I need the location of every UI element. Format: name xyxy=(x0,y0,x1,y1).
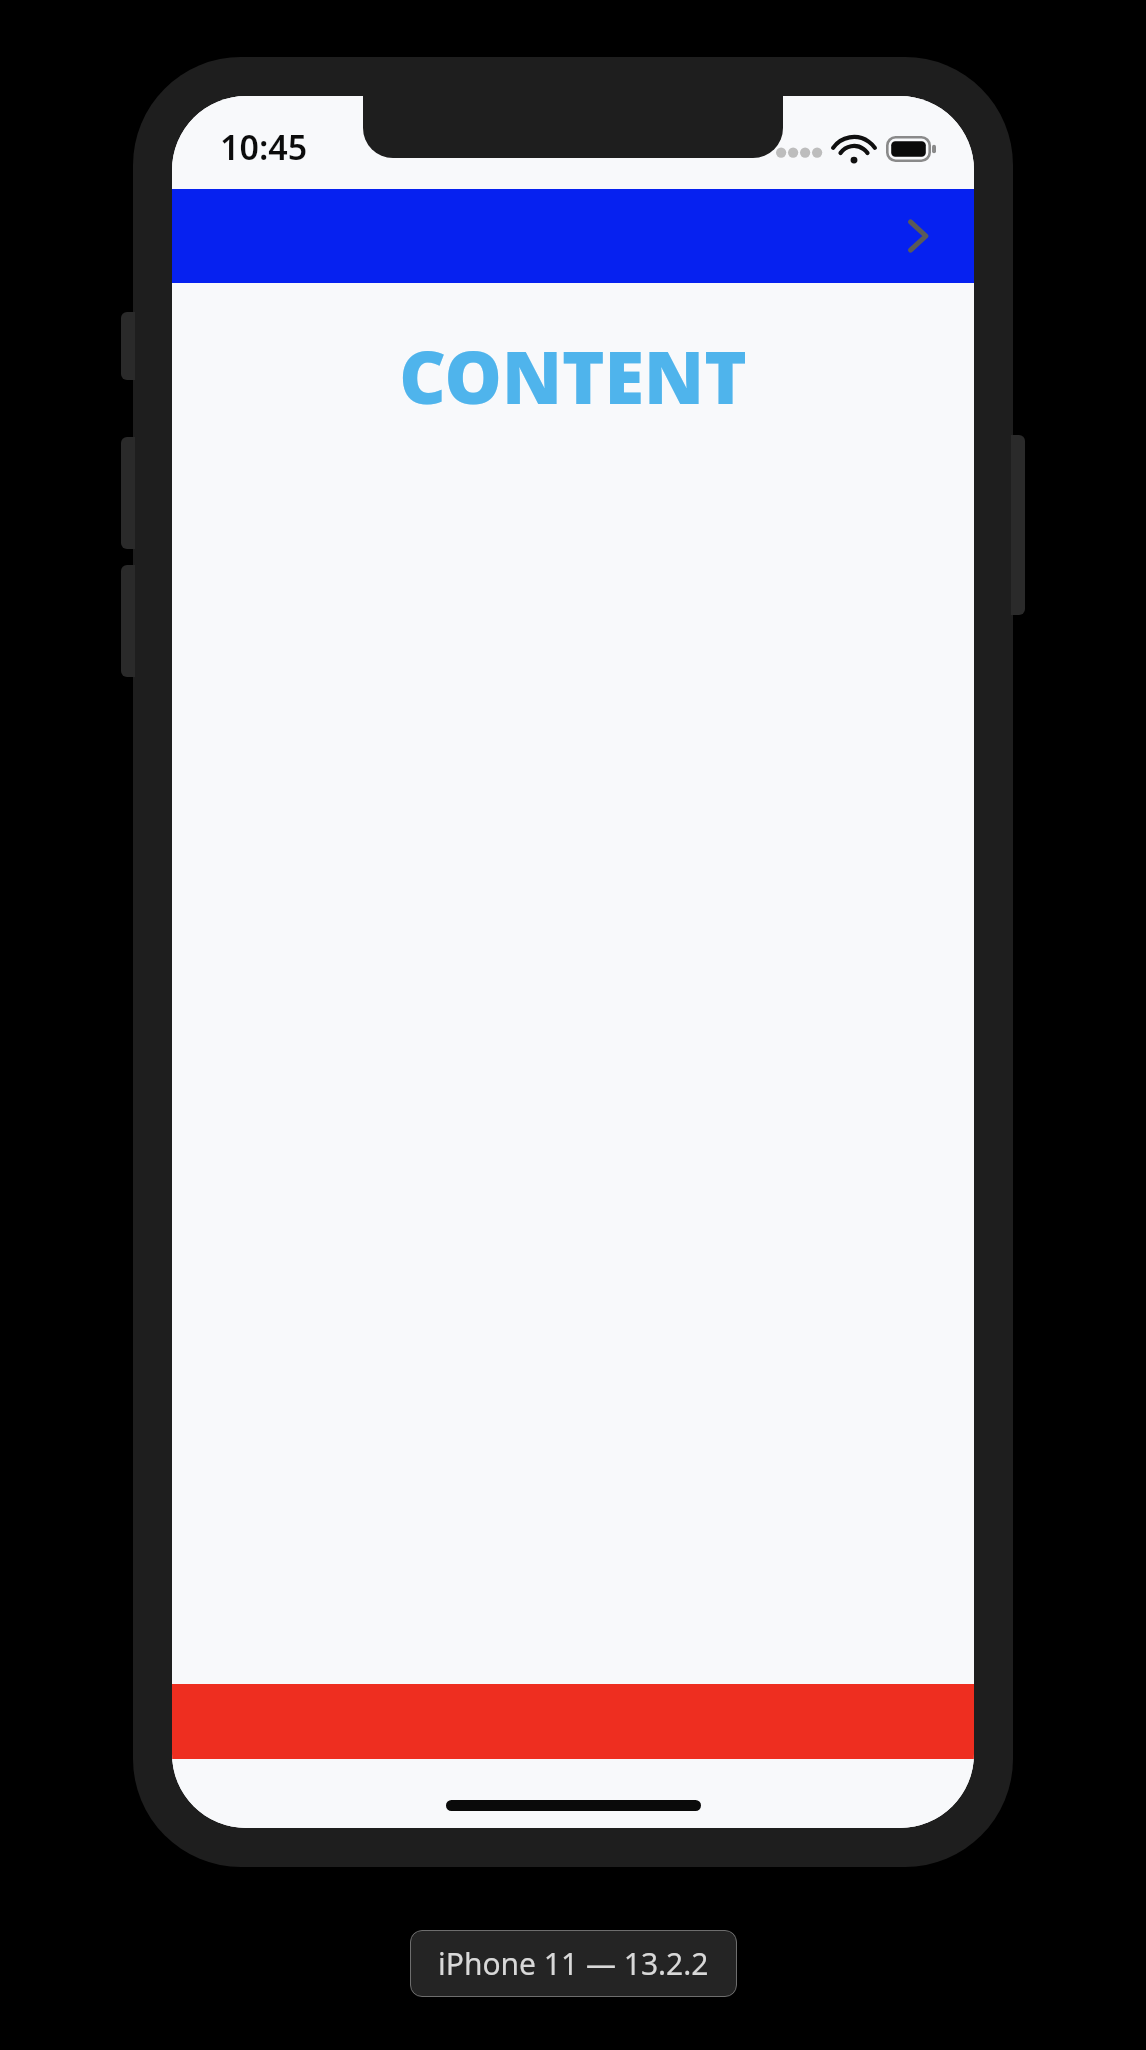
staticText: iPhone 11 — 13.2.2 xyxy=(438,1943,709,1984)
button[interactable]: iPhone 11 — 13.2.2 xyxy=(438,1943,709,1984)
button[interactable]: Next xyxy=(882,200,954,272)
button[interactable]: Next xyxy=(172,189,974,283)
staticText: CONTENT xyxy=(172,327,974,425)
staticText: 10:45 xyxy=(220,124,308,170)
